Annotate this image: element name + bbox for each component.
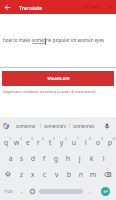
- button[interactable]: m: [87, 166, 99, 182]
- button[interactable]: u: [68, 134, 80, 150]
- staticText: q: [4, 138, 8, 147]
- button[interactable]: Back: [0, 0, 14, 14]
- button[interactable]: c: [39, 166, 51, 182]
- staticText: someones: [73, 123, 95, 129]
- staticText: p: [108, 138, 112, 147]
- staticText: 3: [31, 137, 33, 141]
- staticText: 0: [113, 137, 115, 141]
- button[interactable]: p: [104, 134, 116, 150]
- staticText: ,: [21, 187, 23, 195]
- staticText: n: [79, 170, 84, 179]
- staticText: c: [43, 170, 47, 179]
- button[interactable]: o: [92, 134, 104, 150]
- button[interactable]: b: [63, 166, 75, 182]
- staticText: bagaimana membuat seseorang populer di m…: [3, 89, 96, 94]
- button[interactable]: Backspace: [99, 166, 116, 182]
- button[interactable]: v: [51, 166, 63, 182]
- staticText: 2: [20, 137, 22, 141]
- button[interactable]: k: [86, 150, 98, 166]
- button[interactable]: Space: [39, 189, 83, 194]
- button[interactable]: TRANSLATE: [2, 71, 114, 86]
- button[interactable]: t: [44, 134, 56, 150]
- button[interactable]: i: [80, 134, 92, 150]
- button[interactable]: f: [38, 150, 50, 166]
- button[interactable]: r: [33, 134, 44, 150]
- button[interactable]: Emoji: [27, 182, 38, 200]
- staticText: h: [66, 154, 71, 163]
- staticText: 5: [53, 137, 55, 141]
- staticText: 8: [89, 137, 91, 141]
- staticText: d: [31, 154, 35, 163]
- button[interactable]: e: [22, 134, 33, 150]
- staticText: someone's: [44, 123, 67, 129]
- button[interactable]: Voice input: [98, 117, 116, 134]
- staticText: f: [43, 154, 46, 163]
- staticText: j: [79, 154, 81, 163]
- staticText: EN: [83, 4, 89, 10]
- button[interactable]: ,: [17, 182, 27, 200]
- staticText: r: [37, 138, 40, 147]
- button[interactable]: q: [0, 134, 11, 150]
- button[interactable]: l: [98, 150, 110, 166]
- button[interactable]: w: [11, 134, 22, 150]
- button[interactable]: Enter: [95, 182, 116, 200]
- staticText: a: [9, 154, 13, 163]
- staticText: s: [20, 154, 24, 163]
- staticText: i: [85, 138, 87, 147]
- staticText: 9: [101, 137, 103, 141]
- button[interactable]: n: [75, 166, 87, 182]
- staticText: 6: [65, 137, 67, 141]
- staticText: x: [31, 170, 35, 179]
- button[interactable]: someone's: [41, 117, 69, 134]
- button[interactable]: g: [50, 150, 62, 166]
- staticText: m: [90, 170, 97, 179]
- staticText: 7: [77, 137, 79, 141]
- staticText: l: [103, 154, 105, 163]
- staticText: v: [55, 170, 59, 179]
- button[interactable]: z: [16, 166, 27, 182]
- staticText: z: [20, 170, 24, 179]
- staticText: .: [89, 187, 91, 195]
- staticText: ?123: [4, 189, 13, 194]
- staticText: ID: [95, 4, 100, 10]
- staticText: 4: [42, 137, 44, 141]
- button[interactable]: a: [5, 150, 16, 166]
- button[interactable]: h: [62, 150, 74, 166]
- staticText: Translate: [19, 4, 43, 11]
- staticText: TRANSLATE: [47, 76, 70, 82]
- button[interactable]: d: [27, 150, 38, 166]
- staticText: o: [96, 138, 100, 147]
- staticText: b: [67, 170, 71, 179]
- staticText: w: [14, 138, 20, 147]
- staticText: someone: [16, 123, 36, 129]
- staticText: u: [72, 138, 77, 147]
- button[interactable]: Shift: [0, 166, 16, 182]
- button[interactable]: j: [74, 150, 86, 166]
- staticText: 1: [9, 137, 11, 141]
- button[interactable]: s: [16, 150, 27, 166]
- button[interactable]: ?123: [0, 182, 17, 200]
- staticText: k: [90, 154, 94, 163]
- button[interactable]: x: [27, 166, 39, 182]
- button[interactable]: someones: [70, 117, 98, 134]
- staticText: g: [54, 154, 58, 163]
- button[interactable]: someone: [11, 117, 40, 134]
- button[interactable]: EN: [83, 0, 112, 14]
- staticText: e: [26, 138, 30, 147]
- staticText: how to make someone popular on woman eye…: [3, 37, 105, 43]
- button[interactable]: y: [56, 134, 68, 150]
- staticText: t: [49, 138, 52, 147]
- button[interactable]: .: [84, 182, 95, 200]
- staticText: y: [60, 138, 64, 147]
